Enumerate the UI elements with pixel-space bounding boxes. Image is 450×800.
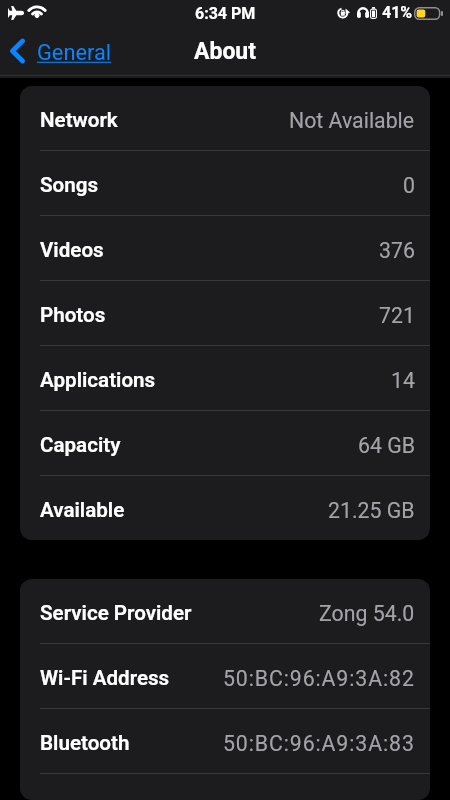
staticText: Wi-Fi Address: [40, 666, 170, 690]
other: Wi-Fi: [28, 1, 46, 18]
staticText: 0: [403, 173, 415, 198]
button[interactable]: Available: [20, 476, 430, 540]
staticText: 50:BC:96:A9:3A:82: [223, 666, 415, 691]
staticText: 6:34 PM: [195, 4, 256, 23]
staticText: Videos: [40, 238, 104, 262]
button[interactable]: Wi-Fi Address: [20, 644, 430, 708]
button[interactable]: Service Provider: [20, 579, 430, 643]
button[interactable]: Bluetooth: [20, 709, 430, 773]
staticText: Applications: [40, 368, 156, 392]
staticText: Not Available: [289, 108, 415, 133]
other: Airplane mode: [8, 6, 24, 20]
staticText: Songs: [40, 173, 99, 197]
button[interactable]: Photos: [20, 281, 430, 345]
button[interactable]: Network: [20, 86, 430, 150]
button[interactable]: Applications: [20, 346, 430, 410]
staticText: 376: [379, 238, 415, 263]
staticText: Capacity: [40, 433, 121, 457]
button[interactable]: Songs: [20, 151, 430, 215]
staticText: Available: [40, 498, 125, 522]
staticText: Network: [40, 108, 118, 132]
staticText: Bluetooth: [40, 731, 130, 755]
staticText: Zong 54.0: [319, 601, 415, 626]
staticText: 41%: [382, 3, 413, 22]
other: Headphones connected: [357, 7, 369, 18]
staticText: 50:BC:96:A9:3A:83: [223, 731, 415, 756]
button[interactable]: Back to General: [7, 41, 112, 67]
other: Battery 41 percent, low power mode: [414, 7, 443, 20]
staticText: 21.25 GB: [328, 498, 415, 523]
other: Rotation lock: [337, 7, 350, 19]
staticText: Photos: [40, 303, 106, 327]
staticText: General: [37, 40, 112, 66]
button[interactable]: Capacity: [20, 411, 430, 475]
staticText: 64 GB: [358, 433, 415, 458]
staticText: 721: [379, 303, 415, 328]
staticText: 14: [391, 368, 415, 393]
button[interactable]: Videos: [20, 216, 430, 280]
staticText: About: [194, 38, 257, 65]
staticText: Service Provider: [40, 601, 192, 625]
